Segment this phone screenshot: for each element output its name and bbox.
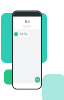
staticText: bbbb [23, 25, 31, 28]
staticText: hello [20, 32, 28, 36]
staticText: hi [36, 78, 39, 81]
staticText: Aa [24, 18, 29, 24]
